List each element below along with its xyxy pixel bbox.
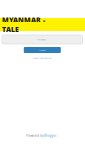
staticText: Powered by [26,133,43,137]
staticText: . [57,133,58,137]
staticText: No posts. [37,38,47,41]
staticText: View web version [33,56,51,59]
button[interactable]: MYANMAR - TALE [0,18,85,31]
staticText: Blogger [44,133,56,137]
staticText: MYANMAR - TALE [2,15,45,34]
button[interactable]: Home [24,47,61,53]
button[interactable]: View web version [33,56,51,60]
staticText: Home [39,48,45,52]
button[interactable]: Powered by [26,133,58,138]
